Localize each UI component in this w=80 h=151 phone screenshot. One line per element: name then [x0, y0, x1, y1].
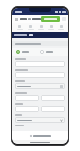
button[interactable]: Menu — [14, 17, 19, 22]
button[interactable]: Pick value — [15, 83, 65, 89]
button[interactable] — [15, 61, 65, 67]
button[interactable]: Action 2 — [36, 23, 46, 32]
button[interactable]: Action 3 — [46, 23, 56, 32]
button[interactable]: Action 1 — [25, 23, 36, 32]
button[interactable] — [40, 48, 64, 56]
button[interactable]: Action 0 — [14, 23, 25, 32]
button[interactable] — [15, 117, 65, 123]
button[interactable] — [41, 16, 60, 22]
button[interactable] — [14, 34, 27, 36]
button[interactable] — [41, 106, 65, 112]
button[interactable] — [41, 95, 65, 101]
button[interactable] — [15, 106, 39, 112]
button[interactable] — [29, 34, 33, 36]
button[interactable] — [26, 133, 55, 139]
button[interactable]: Action 4 — [56, 23, 66, 32]
button[interactable] — [15, 72, 65, 78]
button[interactable] — [16, 48, 40, 56]
button[interactable] — [15, 95, 39, 101]
